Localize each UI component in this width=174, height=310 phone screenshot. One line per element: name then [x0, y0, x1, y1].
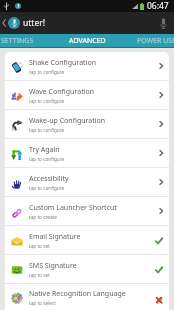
- button[interactable]: Accessibility: [5, 168, 169, 196]
- staticText: ADVANCED: [69, 36, 106, 46]
- button[interactable]: Wake-up Configuration: [5, 110, 169, 138]
- staticText: Wave Configuration: [29, 87, 95, 97]
- staticText: tap to configure: [29, 156, 65, 162]
- button[interactable]: SETTINGS: [0, 34, 52, 48]
- button[interactable]: Try Again: [5, 139, 169, 167]
- staticText: Native Recognition Language: [29, 289, 126, 299]
- staticText: tap to set: [29, 243, 50, 249]
- button[interactable]: Email Signature: [5, 226, 169, 254]
- staticText: Shake Configuration: [29, 58, 97, 68]
- staticText: Try Again: [29, 145, 60, 155]
- staticText: tap to create: [29, 214, 57, 220]
- staticText: tap to configure: [29, 69, 65, 75]
- staticText: 06:47: [147, 0, 169, 12]
- button[interactable]: ADVANCED: [52, 34, 122, 48]
- staticText: tap to set: [29, 272, 50, 278]
- button[interactable]: Wave Configuration: [5, 81, 169, 109]
- staticText: POWER USER: [137, 36, 174, 46]
- staticText: Accessibility: [29, 174, 69, 184]
- staticText: SMS Signature: [29, 261, 77, 271]
- staticText: tap to select: [29, 300, 56, 306]
- staticText: tap to configure: [29, 185, 65, 191]
- other: Back: [2, 19, 6, 27]
- button[interactable]: Back: [0, 12, 51, 34]
- button[interactable]: POWER USER: [122, 34, 174, 48]
- staticText: tap to configure: [29, 98, 65, 104]
- button[interactable]: Shake Configuration: [5, 52, 169, 80]
- staticText: Email Signature: [29, 232, 81, 242]
- button[interactable]: SMS Signature: [5, 255, 169, 283]
- button[interactable]: Voice input: [152, 12, 174, 34]
- staticText: Custom Launcher Shortcut: [29, 203, 117, 213]
- staticText: tap to configure: [29, 127, 65, 133]
- staticText: SETTINGS: [1, 36, 34, 46]
- staticText: Wake-up Configuration: [29, 116, 106, 126]
- staticText: utter!: [23, 17, 45, 29]
- button[interactable]: Native Recognition Language: [5, 284, 169, 310]
- button[interactable]: Custom Launcher Shortcut: [5, 197, 169, 225]
